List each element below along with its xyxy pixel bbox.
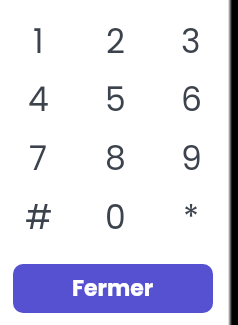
- button[interactable]: 4: [0, 69, 77, 128]
- button[interactable]: 9: [153, 128, 229, 187]
- button[interactable]: 1: [0, 12, 77, 69]
- button[interactable]: Fermer: [13, 264, 213, 313]
- staticText: 0: [105, 194, 126, 240]
- button[interactable]: *: [153, 187, 229, 246]
- staticText: 8: [105, 135, 126, 181]
- button[interactable]: 8: [77, 128, 153, 187]
- button[interactable]: 3: [153, 12, 229, 69]
- button[interactable]: 7: [0, 128, 77, 187]
- button[interactable]: 2: [77, 12, 153, 69]
- button[interactable]: 6: [153, 69, 229, 128]
- staticText: *: [183, 194, 200, 240]
- staticText: 1: [33, 18, 44, 64]
- staticText: 3: [181, 18, 201, 64]
- staticText: 6: [181, 76, 202, 122]
- staticText: 2: [106, 18, 125, 64]
- staticText: 7: [29, 135, 48, 181]
- staticText: 5: [105, 76, 126, 122]
- button[interactable]: 5: [77, 69, 153, 128]
- button[interactable]: 0: [77, 187, 153, 246]
- staticText: #: [25, 194, 53, 240]
- staticText: 4: [28, 76, 49, 122]
- staticText: Fermer: [72, 273, 154, 304]
- staticText: 9: [181, 135, 202, 181]
- button[interactable]: #: [0, 187, 77, 246]
